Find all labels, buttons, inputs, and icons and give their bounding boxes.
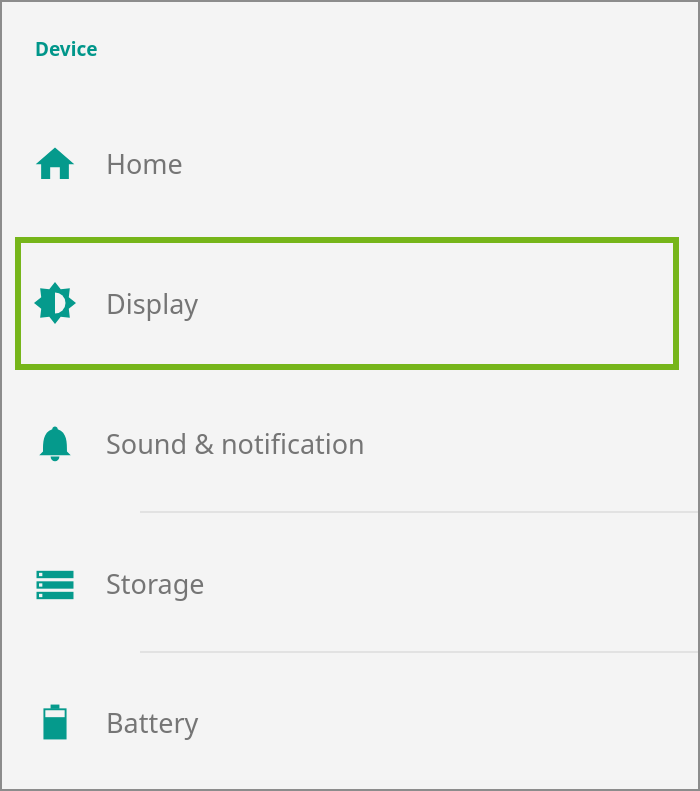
other: Storage bbox=[34, 562, 76, 604]
button[interactable]: Display selected bbox=[15, 237, 679, 370]
button[interactable]: Sound & notification bbox=[0, 373, 700, 513]
other: Sound & notification bbox=[34, 422, 76, 464]
staticText: Display bbox=[106, 285, 199, 322]
button[interactable]: Storage bbox=[0, 513, 700, 653]
button[interactable]: Home bbox=[0, 93, 700, 233]
staticText: Device bbox=[35, 36, 98, 62]
button[interactable]: Display bbox=[0, 233, 700, 373]
other: Display bbox=[34, 282, 76, 324]
staticText: Sound & notification bbox=[106, 425, 365, 462]
staticText: Home bbox=[106, 145, 183, 182]
staticText: Storage bbox=[106, 565, 205, 602]
other: Home bbox=[34, 142, 76, 184]
other: Battery bbox=[34, 701, 76, 743]
button[interactable]: Battery bbox=[0, 652, 700, 791]
staticText: Battery bbox=[106, 704, 199, 741]
